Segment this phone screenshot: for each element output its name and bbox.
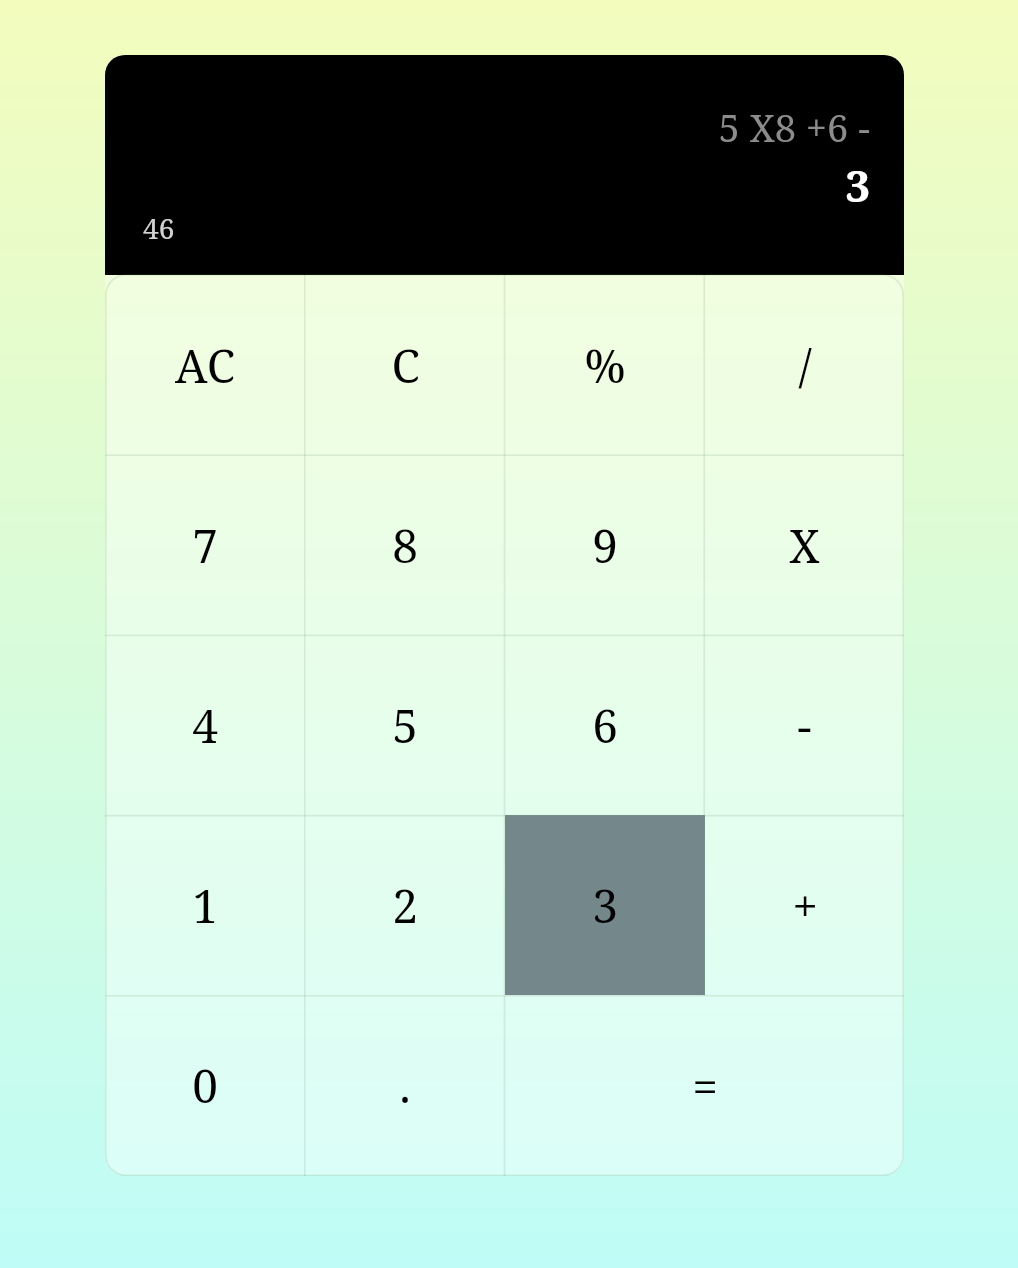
- staticText: X: [789, 514, 820, 577]
- staticText: 3: [592, 874, 618, 937]
- staticText: 7: [192, 514, 218, 577]
- staticText: 8: [392, 514, 418, 577]
- button[interactable]: 3: [505, 815, 705, 995]
- button[interactable]: +: [705, 815, 904, 995]
- staticText: 0: [192, 1054, 218, 1117]
- button[interactable]: 1: [105, 815, 305, 995]
- button[interactable]: 9: [505, 455, 705, 635]
- staticText: 2: [392, 874, 418, 937]
- staticText: 46: [143, 209, 175, 247]
- staticText: 5 X8 +6 -: [718, 101, 870, 153]
- button[interactable]: 4: [105, 635, 305, 815]
- button[interactable]: -: [705, 635, 904, 815]
- staticText: C: [391, 334, 420, 397]
- button[interactable]: AC: [105, 275, 305, 455]
- staticText: 3: [845, 155, 870, 215]
- button[interactable]: X: [705, 455, 904, 635]
- staticText: AC: [175, 334, 235, 397]
- button[interactable]: 5: [305, 635, 505, 815]
- staticText: 1: [192, 874, 218, 937]
- staticText: 5: [392, 694, 418, 757]
- button[interactable]: .: [305, 995, 505, 1175]
- button[interactable]: C: [305, 275, 505, 455]
- staticText: +: [792, 874, 818, 937]
- button[interactable]: 6: [505, 635, 705, 815]
- staticText: .: [399, 1054, 411, 1117]
- staticText: %: [584, 334, 626, 397]
- button[interactable]: 8: [305, 455, 505, 635]
- staticText: 6: [592, 694, 618, 757]
- staticText: =: [692, 1054, 718, 1117]
- button[interactable]: =: [505, 995, 904, 1175]
- button[interactable]: 2: [305, 815, 505, 995]
- button[interactable]: /: [705, 275, 904, 455]
- button[interactable]: 7: [105, 455, 305, 635]
- staticText: 9: [592, 514, 618, 577]
- staticText: 4: [192, 694, 218, 757]
- staticText: -: [797, 694, 812, 757]
- button[interactable]: %: [505, 275, 705, 455]
- staticText: /: [798, 334, 812, 397]
- button[interactable]: 0: [105, 995, 305, 1175]
